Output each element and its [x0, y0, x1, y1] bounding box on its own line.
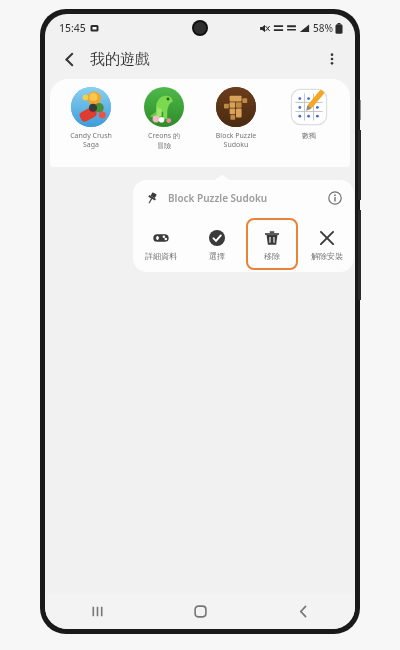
staticText: 我的遊戲: [90, 50, 150, 69]
staticText: 選擇: [191, 251, 243, 261]
button[interactable]: Back: [53, 43, 85, 75]
button[interactable]: App info: [325, 188, 345, 208]
staticText: Creons 的 冒險: [132, 131, 196, 150]
button[interactable]: 移除: [246, 218, 298, 270]
staticText: 詳細資料: [135, 251, 187, 261]
staticText: 移除: [246, 251, 298, 261]
button[interactable]: Recent apps: [45, 593, 149, 629]
button[interactable]: 選擇: [191, 218, 243, 270]
staticText: Block Puzzle Sudoku: [204, 131, 268, 149]
staticText: 解除安裝: [301, 251, 353, 261]
staticText: Candy Crush Saga: [59, 131, 123, 149]
staticText: 15:45: [59, 21, 86, 35]
button[interactable]: More options: [317, 44, 347, 74]
staticText: 數獨: [277, 131, 341, 140]
button[interactable]: Home: [149, 593, 252, 629]
staticText: 58%: [313, 21, 333, 35]
button[interactable]: Creons 的 冒險: [132, 85, 196, 150]
button[interactable]: Back: [252, 593, 355, 629]
button[interactable]: 數獨: [277, 85, 341, 140]
button[interactable]: Pin: [142, 188, 162, 208]
staticText: Block Puzzle Sudoku: [168, 191, 325, 205]
button[interactable]: 詳細資料: [135, 218, 187, 270]
button[interactable]: Candy Crush Saga: [59, 85, 123, 149]
button[interactable]: 解除安裝: [301, 218, 353, 270]
button[interactable]: Block Puzzle Sudoku: [204, 85, 268, 149]
